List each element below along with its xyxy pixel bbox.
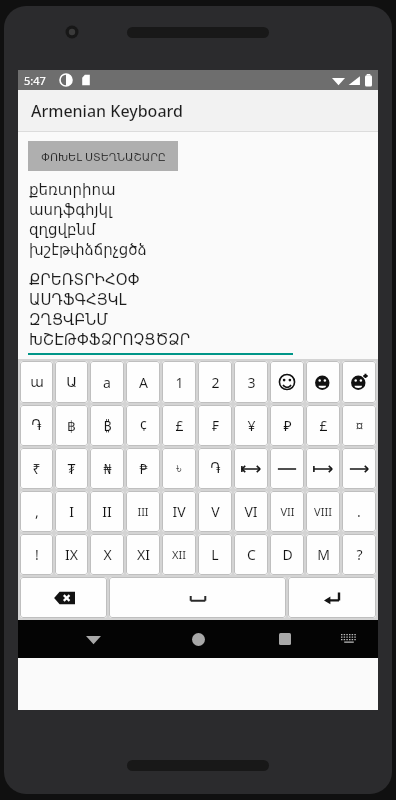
button[interactable]: VI <box>234 491 268 532</box>
button[interactable]: £ <box>162 405 196 446</box>
staticText: ֏ <box>31 419 42 433</box>
button[interactable]: 3 <box>234 361 268 403</box>
staticText: ! <box>35 545 39 564</box>
button[interactable]: ₦ <box>90 448 124 489</box>
staticText: C <box>247 545 256 564</box>
button[interactable]: ֏ <box>20 405 53 446</box>
button[interactable] <box>342 361 376 403</box>
button[interactable]: Space <box>109 577 286 618</box>
button[interactable] <box>270 448 304 489</box>
button[interactable]: Ա <box>55 361 88 403</box>
staticText: ₿ <box>103 416 112 435</box>
button[interactable]: I <box>55 491 88 532</box>
staticText: £ <box>319 416 328 435</box>
button[interactable]: Backspace <box>20 577 107 618</box>
button[interactable]: ¢ <box>126 405 160 446</box>
button[interactable]: II <box>90 491 124 532</box>
button[interactable]: M <box>306 534 340 575</box>
staticText: ₽ <box>283 416 292 435</box>
button[interactable]: VII <box>270 491 304 532</box>
button[interactable]: X <box>90 534 124 575</box>
button[interactable] <box>234 448 268 489</box>
staticText: 1 <box>175 373 184 392</box>
button[interactable]: Home <box>181 622 215 656</box>
button[interactable]: ₿ <box>90 405 124 446</box>
staticText: ասդֆգհյկլ <box>29 201 113 218</box>
button[interactable] <box>342 448 376 489</box>
button[interactable]: ֏ <box>198 448 232 489</box>
staticText: . <box>357 502 361 521</box>
button[interactable]: Recents <box>268 622 302 656</box>
staticText: ₱ <box>139 459 148 478</box>
button[interactable]: Back <box>76 622 110 656</box>
button[interactable]: V <box>198 491 232 532</box>
staticText: IV <box>172 502 186 521</box>
staticText: VI <box>244 502 258 521</box>
button[interactable]: ? <box>342 534 376 575</box>
button[interactable]: III <box>126 491 160 532</box>
button[interactable]: Enter <box>288 577 376 618</box>
staticText: X <box>103 545 112 564</box>
staticText: VIII <box>314 504 332 519</box>
button[interactable]: , <box>20 491 53 532</box>
staticText: XII <box>172 547 186 562</box>
button[interactable]: ₣ <box>198 405 232 446</box>
button[interactable]: ¤ <box>342 405 376 446</box>
staticText: ¥ <box>247 416 256 435</box>
staticText: L <box>211 545 219 564</box>
staticText: ₣ <box>211 416 220 435</box>
button[interactable]: ₮ <box>55 448 88 489</box>
staticText: M <box>317 545 330 564</box>
staticText: III <box>137 504 149 519</box>
staticText: V <box>211 502 220 521</box>
button[interactable]: XII <box>162 534 196 575</box>
button[interactable]: L <box>198 534 232 575</box>
staticText: II <box>102 502 112 521</box>
button[interactable]: ! <box>20 534 53 575</box>
staticText: ₮ <box>67 459 76 478</box>
staticText: XI <box>137 545 150 564</box>
staticText: 3 <box>247 373 256 392</box>
button[interactable] <box>306 361 340 403</box>
button[interactable]: ₹ <box>20 448 53 489</box>
staticText: D <box>282 545 293 564</box>
staticText: VII <box>280 504 295 519</box>
staticText: a <box>103 373 111 392</box>
button[interactable]: ৳ <box>162 448 196 489</box>
button[interactable]: XI <box>126 534 160 575</box>
staticText: ¤ <box>355 416 364 435</box>
staticText: ա <box>30 374 44 390</box>
staticText: 2 <box>211 373 220 392</box>
button[interactable]: 1 <box>162 361 196 403</box>
staticText: ฿ <box>67 418 76 434</box>
button[interactable]: . <box>342 491 376 532</box>
button[interactable]: VIII <box>306 491 340 532</box>
staticText: ¢ <box>139 416 148 435</box>
button[interactable]: A <box>126 361 160 403</box>
staticText: , <box>35 502 39 521</box>
button[interactable] <box>270 361 304 403</box>
staticText: ԱՍԴՖԳՀՅԿԼ <box>29 291 127 308</box>
button[interactable]: £ <box>306 405 340 446</box>
staticText: ԽՇԷԹՓՖՁՐՈՉՑԾՁՐ <box>29 331 191 348</box>
button[interactable]: D <box>270 534 304 575</box>
staticText: զղցվբնմ <box>29 221 96 238</box>
button[interactable]: ՓՈԽԵԼ ՍՏԵՂՆԱՇԱՐԸ <box>28 141 178 171</box>
button[interactable]: 2 <box>198 361 232 403</box>
button[interactable]: IX <box>55 534 88 575</box>
button[interactable]: ¥ <box>234 405 268 446</box>
button[interactable]: IV <box>162 491 196 532</box>
staticText: £ <box>175 416 184 435</box>
button[interactable]: ₽ <box>270 405 304 446</box>
button[interactable]: ա <box>20 361 53 403</box>
staticText: A <box>139 373 148 392</box>
staticText: ₦ <box>103 459 112 478</box>
staticText: Armenian Keyboard <box>31 100 183 122</box>
button[interactable] <box>306 448 340 489</box>
button[interactable]: ₱ <box>126 448 160 489</box>
button[interactable]: ฿ <box>55 405 88 446</box>
button[interactable]: C <box>234 534 268 575</box>
button[interactable]: Switch keyboard <box>334 624 364 654</box>
button[interactable]: a <box>90 361 124 403</box>
staticText: քեռտրիոա <box>29 181 116 198</box>
